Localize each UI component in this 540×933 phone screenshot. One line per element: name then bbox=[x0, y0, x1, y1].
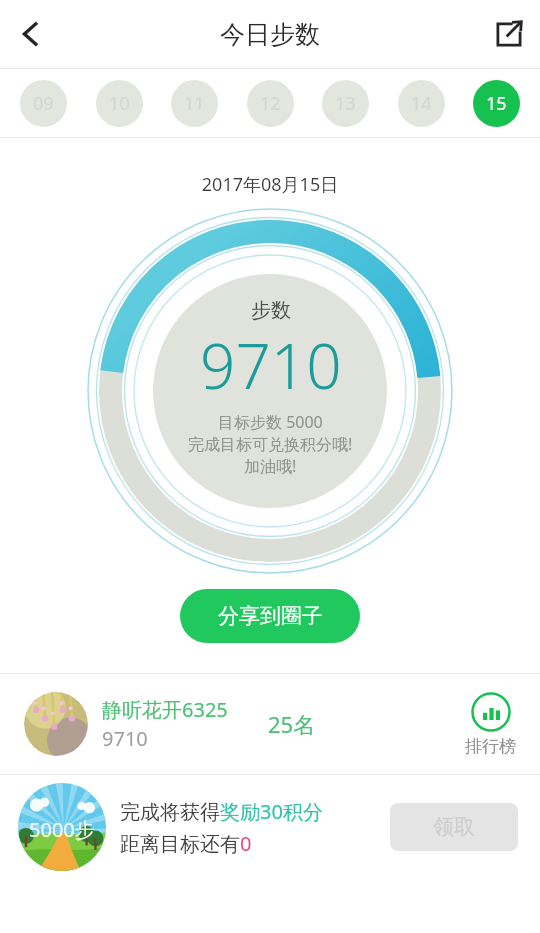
button[interactable]: 分享 bbox=[478, 3, 540, 65]
staticText: 9710 bbox=[102, 725, 148, 752]
staticText: 距离目标还有0 bbox=[120, 830, 252, 857]
button[interactable]: 14 bbox=[398, 80, 445, 127]
button[interactable]: 领取 bbox=[390, 803, 518, 851]
staticText: 分享到圈子 bbox=[218, 603, 323, 629]
button[interactable]: 13 bbox=[322, 80, 369, 127]
staticText: 完成将获得奖励30积分 bbox=[120, 798, 323, 825]
staticText: 5000步 bbox=[29, 816, 95, 843]
staticText: 今日步数 bbox=[220, 19, 320, 50]
button[interactable]: 静听花开6325 bbox=[0, 674, 540, 774]
button[interactable]: 12 bbox=[247, 80, 294, 127]
staticText: 15 bbox=[486, 91, 507, 116]
staticText: 完成目标可兑换积分哦! bbox=[188, 433, 353, 455]
staticText: 加油哦! bbox=[244, 455, 297, 477]
button[interactable]: 11 bbox=[171, 80, 218, 127]
button[interactable]: 返回 bbox=[0, 3, 62, 65]
staticText: 目标步数 5000 bbox=[218, 411, 323, 433]
staticText: 领取 bbox=[433, 814, 475, 840]
button[interactable]: 15 bbox=[473, 80, 520, 127]
staticText: 12 bbox=[260, 91, 281, 116]
staticText: 排行榜 bbox=[465, 736, 516, 757]
staticText: 10 bbox=[109, 91, 130, 116]
staticText: 静听花开6325 bbox=[102, 696, 228, 723]
staticText: 2017年08月15日 bbox=[0, 172, 540, 197]
staticText: 14 bbox=[411, 91, 432, 116]
staticText: 25名 bbox=[268, 709, 316, 739]
staticText: 11 bbox=[184, 91, 205, 116]
staticText: 09 bbox=[33, 91, 54, 116]
button[interactable]: 排行榜 bbox=[465, 692, 516, 757]
staticText: 步数 bbox=[251, 298, 291, 323]
staticText: 13 bbox=[335, 91, 356, 116]
button[interactable]: 10 bbox=[96, 80, 143, 127]
staticText: 9710 bbox=[200, 323, 342, 407]
button[interactable]: 09 bbox=[20, 80, 67, 127]
button[interactable]: 分享到圈子 bbox=[180, 589, 360, 643]
